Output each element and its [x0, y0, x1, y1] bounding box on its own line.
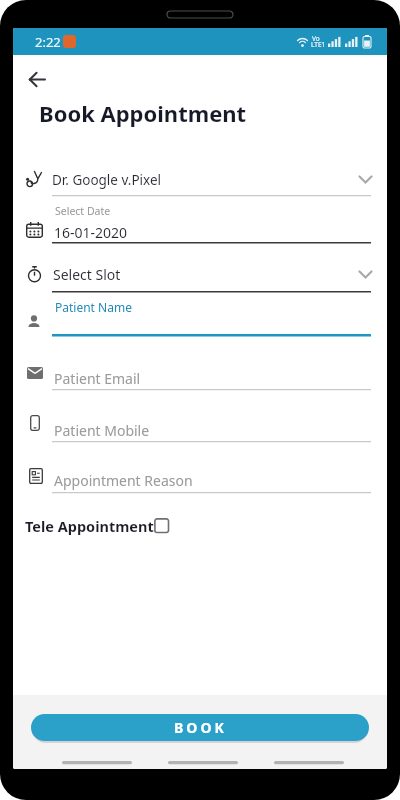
button[interactable] — [23, 464, 377, 496]
staticText: LTE1 — [311, 40, 326, 49]
staticText: 2:22 — [35, 33, 61, 51]
staticText: Patient Email — [54, 369, 141, 388]
staticText: Select Slot — [53, 265, 121, 284]
staticText: Dr. Google v.Pixel — [52, 171, 162, 189]
button[interactable] — [23, 260, 377, 294]
button[interactable] — [23, 166, 377, 198]
staticText: Patient Mobile — [54, 421, 150, 440]
staticText: Vo — [312, 34, 323, 43]
staticText: Appointment Reason — [54, 471, 193, 490]
button[interactable] — [154, 518, 170, 534]
staticText: Patient Name — [55, 299, 132, 315]
button[interactable] — [23, 412, 377, 444]
button[interactable]: BOOK — [31, 714, 369, 741]
staticText: Tele Appointment — [25, 516, 154, 536]
staticText: Book Appointment — [39, 98, 247, 128]
button[interactable] — [23, 298, 377, 340]
staticText: BOOK — [174, 718, 227, 737]
button[interactable] — [21, 64, 53, 94]
staticText: Select Date — [55, 204, 111, 218]
button[interactable] — [23, 203, 377, 245]
staticText: 16-01-2020 — [54, 223, 128, 242]
button[interactable] — [23, 360, 377, 392]
